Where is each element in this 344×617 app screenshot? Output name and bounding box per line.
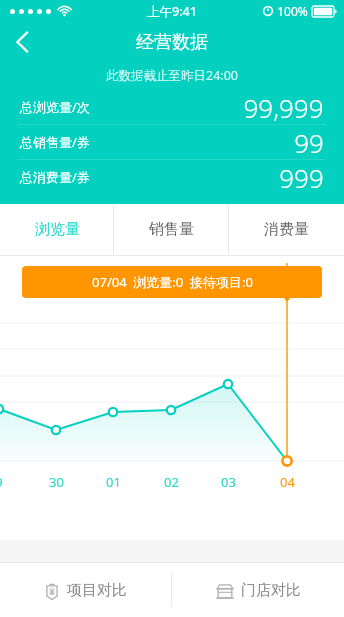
staticText: 99,999 <box>243 90 324 124</box>
staticText: 总销售量/券 <box>20 133 90 151</box>
staticText: 项目对比 <box>67 581 127 600</box>
staticText: 消费量 <box>264 220 309 239</box>
staticText: 9 <box>0 473 3 491</box>
button[interactable]: 返回 <box>0 22 44 62</box>
staticText: 经营数据 <box>136 31 208 54</box>
staticText: 30 <box>49 473 64 491</box>
staticText: 07/04 浏览量:0 接待项目:0 <box>92 273 253 291</box>
staticText: 总消费量/券 <box>20 168 90 186</box>
staticText: 门店对比 <box>241 581 301 600</box>
button[interactable]: 项目对比 <box>0 563 171 617</box>
button[interactable]: 消费量 <box>229 204 344 255</box>
staticText: 02 <box>164 473 179 491</box>
staticText: 99 <box>294 125 324 159</box>
staticText: 01 <box>106 473 121 491</box>
staticText: 100% <box>277 3 308 19</box>
staticText: 999 <box>279 160 324 194</box>
staticText: 03 <box>221 473 236 491</box>
button[interactable]: 浏览量 <box>0 204 114 255</box>
button[interactable]: 07/04 浏览量:0 接待项目:0 <box>22 266 322 298</box>
staticText: 销售量 <box>149 220 194 239</box>
button[interactable]: 销售量 <box>114 204 229 255</box>
staticText: 04 <box>280 473 295 491</box>
button[interactable]: 门店对比 <box>172 563 344 617</box>
staticText: 上午9:41 <box>147 3 197 20</box>
staticText: 总浏览量/次 <box>20 98 90 116</box>
staticText: 浏览量 <box>35 220 80 239</box>
staticText: 此数据截止至昨日24:00 <box>106 67 238 84</box>
